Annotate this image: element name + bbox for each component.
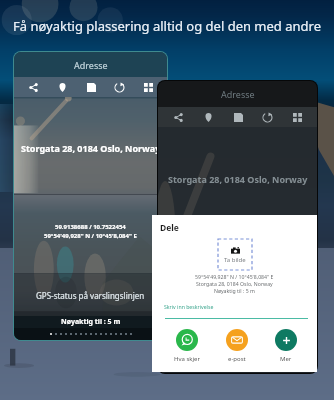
staticText: Nøyaktig til : 5 m — [214, 287, 255, 294]
staticText: GPS-status på varslingslinjen — [36, 290, 145, 301]
button[interactable]: Refresh — [257, 107, 277, 127]
staticText: Storgata 28, 0184 Oslo, Norway — [196, 280, 273, 287]
staticText: Adresse — [74, 59, 108, 71]
button[interactable]: Location — [198, 107, 218, 127]
button[interactable]: Ta bilde — [218, 239, 252, 270]
staticText: Dele — [160, 222, 179, 234]
button[interactable]: Location — [52, 77, 72, 97]
button[interactable]: Hva skjer — [167, 329, 207, 363]
button[interactable]: Mer — [266, 329, 306, 363]
staticText: Storgata 28, 0184 Oslo, Norway — [21, 142, 161, 154]
staticText: Ta bilde — [224, 256, 246, 264]
button[interactable]: Grid — [138, 77, 158, 97]
button[interactable]: e-post — [217, 329, 257, 363]
button[interactable]: Save — [228, 107, 248, 127]
button[interactable]: Share — [168, 107, 188, 127]
staticText: e-post — [228, 355, 246, 363]
staticText: 59°54'49,928" N / 10°45'8,084" E — [195, 273, 274, 280]
button[interactable]: Grid — [287, 107, 307, 127]
staticText: Storgata 28, 0184 Oslo, Norway — [168, 173, 308, 185]
staticText: Nøyaktig til : 5 m — [61, 317, 121, 327]
button[interactable]: Skriv inn beskrivelse — [164, 303, 214, 310]
staticText: 59.9138688 / 10.7522454 — [55, 223, 126, 231]
staticText: Hva skjer — [174, 355, 200, 363]
button[interactable]: Refresh — [109, 77, 129, 97]
staticText: 59°54'49,928" N / 10°45'8,084" E — [44, 232, 137, 240]
button[interactable]: Share — [23, 77, 43, 97]
button[interactable]: Save — [81, 77, 101, 97]
staticText: Adresse — [221, 88, 255, 100]
staticText: Mer — [280, 355, 292, 363]
staticText: Få nøyaktig plassering alltid og del den… — [0, 17, 334, 35]
